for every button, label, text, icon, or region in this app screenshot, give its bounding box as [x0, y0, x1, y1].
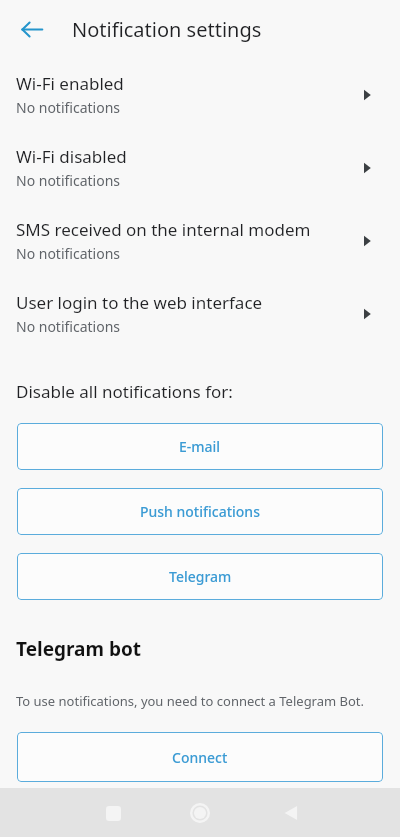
staticText: Connect	[172, 748, 228, 767]
staticText: No notifications	[16, 98, 121, 117]
staticText: Push notifications	[140, 502, 260, 521]
staticText: Disable all notifications for:	[16, 380, 233, 403]
staticText: SMS received on the internal modem	[16, 218, 311, 241]
button[interactable]: Wi-Fi enabled	[0, 58, 400, 131]
button[interactable]: Connect	[17, 732, 383, 782]
button[interactable]: Telegram	[17, 553, 383, 600]
button[interactable]: Wi-Fi disabled	[0, 131, 400, 204]
button[interactable]: Recents	[98, 798, 128, 828]
button[interactable]: Back	[276, 798, 306, 828]
button[interactable]: Home	[184, 797, 216, 829]
staticText: Wi-Fi enabled	[16, 72, 124, 95]
staticText: No notifications	[16, 171, 121, 190]
button[interactable]: SMS received on the internal modem	[0, 204, 400, 277]
button[interactable]: Push notifications	[17, 488, 383, 535]
staticText: Notification settings	[72, 16, 262, 43]
staticText: Telegram bot	[16, 636, 142, 662]
button[interactable]: E-mail	[17, 423, 383, 470]
staticText: No notifications	[16, 317, 121, 336]
staticText: To use notifications, you need to connec…	[16, 692, 365, 710]
staticText: Telegram	[169, 567, 232, 586]
button[interactable]: User login to the web interface	[0, 277, 400, 350]
staticText: No notifications	[16, 244, 121, 263]
staticText: Wi-Fi disabled	[16, 145, 127, 168]
staticText: User login to the web interface	[16, 291, 263, 314]
staticText: E-mail	[179, 437, 221, 456]
button[interactable]: Back	[14, 11, 50, 47]
